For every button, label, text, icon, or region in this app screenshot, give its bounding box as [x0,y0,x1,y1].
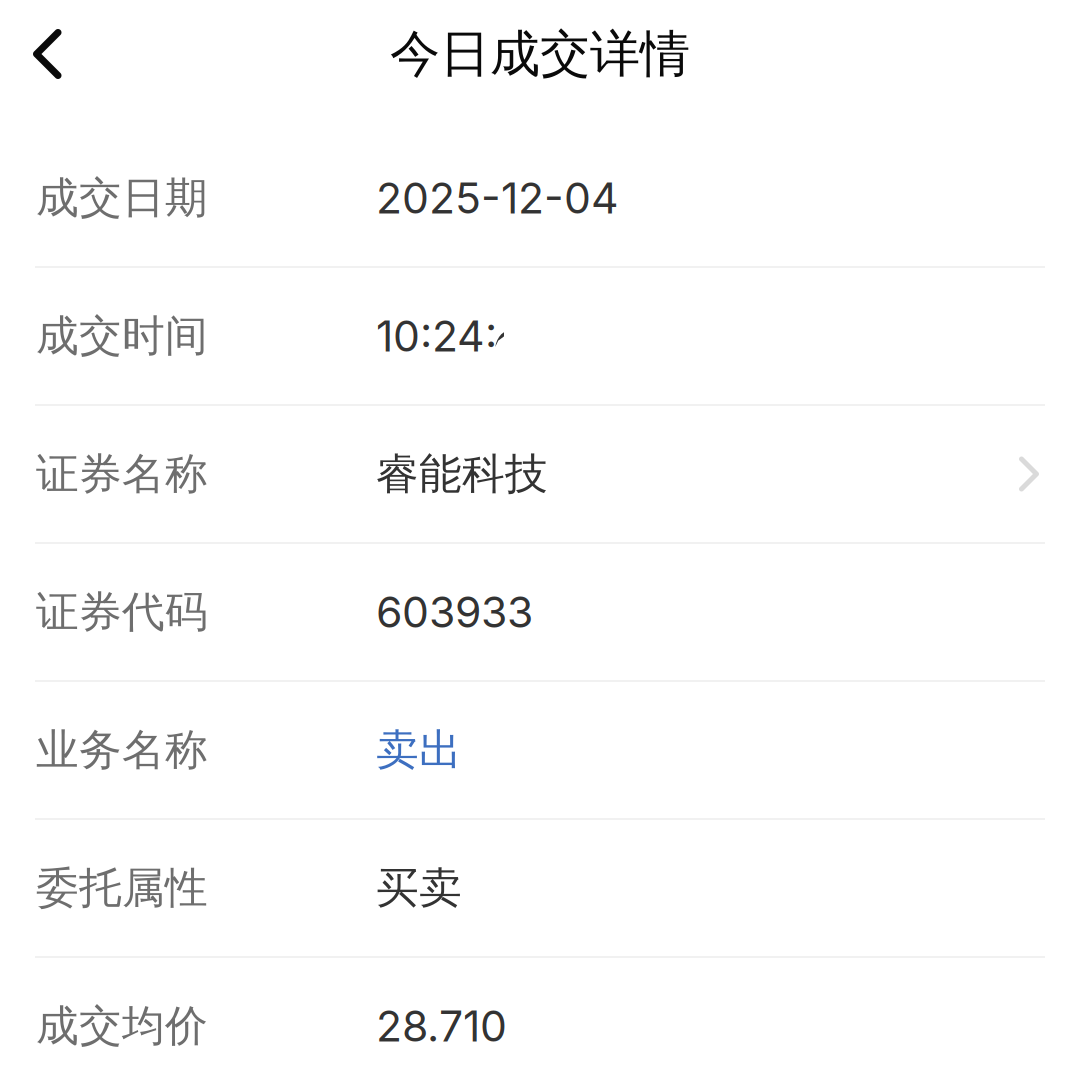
staticText: 10:24: [376,310,497,362]
staticText: 睿能科技 [376,447,548,501]
button[interactable]: 成交均价 [0,958,1080,1085]
button[interactable]: 业务名称 [0,682,1080,820]
button[interactable]: 成交日期 [0,130,1080,268]
staticText: 证券代码 [36,585,208,639]
staticText: 成交均价 [36,999,208,1053]
button[interactable]: 委托属性 [0,820,1080,958]
staticText: 成交日期 [36,171,208,225]
button[interactable]: Back [0,0,88,108]
staticText: 买卖 [376,861,462,915]
staticText: 证券名称 [36,447,208,501]
staticText: 603933 [376,586,533,638]
staticText: 业务名称 [36,723,208,777]
staticText: 委托属性 [36,861,208,915]
button[interactable]: 成交时间 [0,268,1080,406]
staticText: 2025-12-04 [376,172,619,224]
staticText: 成交时间 [36,309,208,363]
button[interactable]: 证券代码 [0,544,1080,682]
staticText: 卖出 [376,723,462,777]
button[interactable]: 证券名称 [0,406,1080,544]
staticText: 28.710 [376,1000,507,1052]
staticText: 今日成交详情 [390,22,690,85]
